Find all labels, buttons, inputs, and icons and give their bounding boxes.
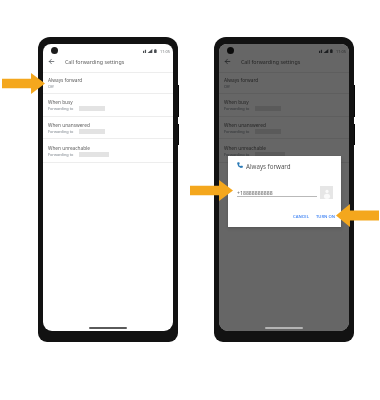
button[interactable]: Always forward bbox=[43, 73, 173, 93]
staticText: When busy bbox=[224, 99, 249, 105]
staticText: +18888888888 bbox=[237, 189, 273, 196]
staticText: Call forwarding settings bbox=[241, 58, 301, 65]
staticText: 11:05 bbox=[160, 49, 170, 54]
staticText: Forwarding to bbox=[224, 152, 250, 157]
staticText: Always forward bbox=[246, 162, 291, 170]
button[interactable]: Navigate up bbox=[222, 56, 233, 67]
button[interactable]: Navigate up bbox=[46, 56, 57, 67]
button[interactable]: When unreachable bbox=[219, 139, 349, 162]
staticText: When busy bbox=[48, 99, 73, 105]
staticText: Forwarding to bbox=[224, 129, 250, 134]
staticText: Forwarding to bbox=[224, 106, 250, 111]
button[interactable]: When unanswered bbox=[43, 117, 173, 138]
staticText: 11:05 bbox=[336, 49, 346, 54]
staticText: Off bbox=[224, 84, 230, 89]
staticText: When unreachable bbox=[48, 145, 90, 151]
staticText: Call forwarding settings bbox=[65, 58, 125, 65]
button[interactable]: When busy bbox=[219, 94, 349, 116]
staticText: Off bbox=[48, 84, 54, 89]
button[interactable]: When unanswered bbox=[219, 117, 349, 138]
staticText: Forwarding to bbox=[48, 129, 74, 134]
button[interactable]: When busy bbox=[43, 94, 173, 116]
button[interactable]: CANCEL bbox=[293, 214, 309, 220]
staticText: Always forward bbox=[48, 77, 83, 83]
button[interactable]: TURN ON bbox=[316, 214, 335, 220]
staticText: Forwarding to bbox=[48, 106, 74, 111]
staticText: When unanswered bbox=[48, 122, 90, 128]
button[interactable]: Select contact bbox=[320, 186, 333, 199]
staticText: Always forward bbox=[224, 77, 259, 83]
staticText: When unreachable bbox=[224, 145, 266, 151]
button[interactable]: Always forward bbox=[219, 73, 349, 93]
button[interactable]: When unreachable bbox=[43, 139, 173, 162]
staticText: When unanswered bbox=[224, 122, 266, 128]
staticText: Forwarding to bbox=[48, 152, 74, 157]
